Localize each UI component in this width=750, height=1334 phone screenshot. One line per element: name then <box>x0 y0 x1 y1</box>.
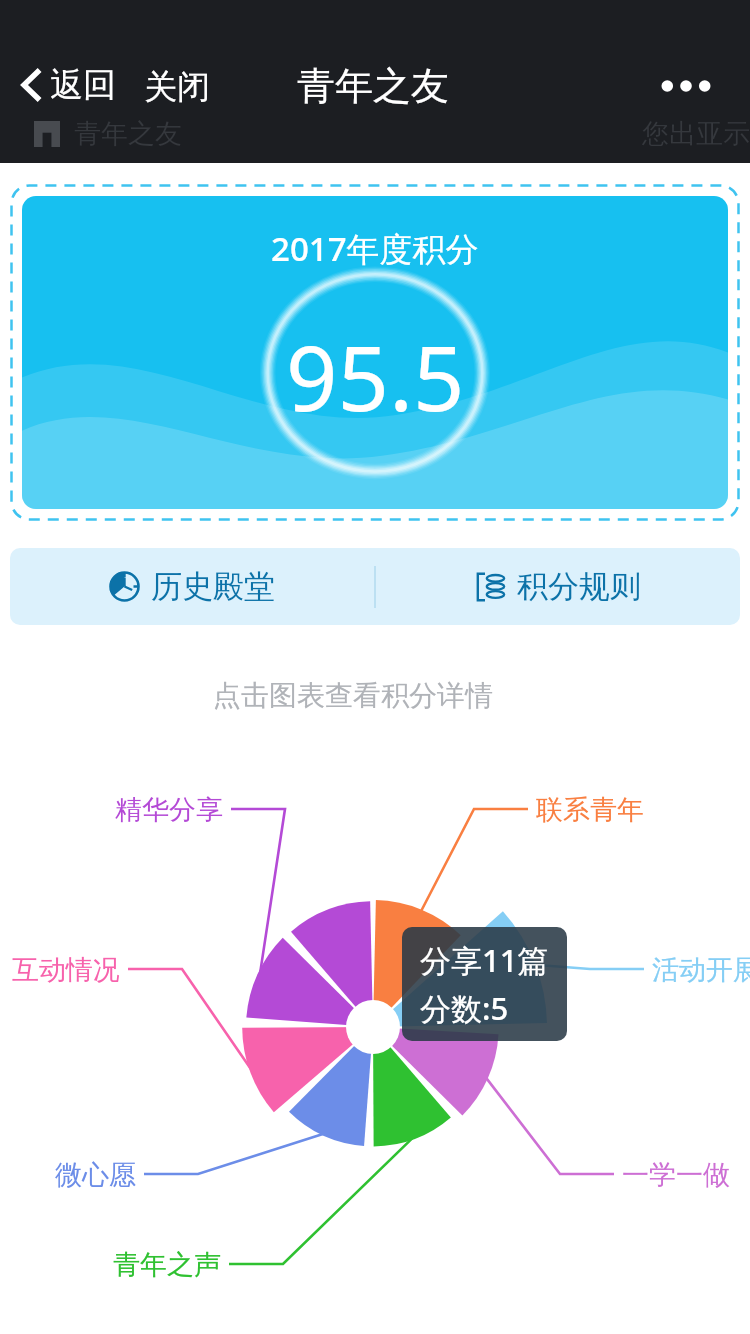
staticText: 2017年度积分 <box>271 226 479 271</box>
button[interactable]: 2017年度积分 <box>10 184 740 521</box>
staticText: 联系青年 <box>536 793 644 827</box>
button[interactable]: More options <box>654 54 718 118</box>
button[interactable]: 历史殿堂 <box>10 548 374 625</box>
staticText: 积分规则 <box>517 567 641 606</box>
button[interactable]: 联系青年 <box>0 0 750 1334</box>
staticText: 95.5 <box>286 315 465 438</box>
staticText: 关闭 <box>144 66 210 108</box>
staticText: 活动开展 <box>652 953 750 987</box>
staticText: 青年之友 <box>74 117 182 151</box>
staticText: 历史殿堂 <box>151 567 275 606</box>
staticText: 一学一做 <box>622 1158 730 1192</box>
staticText: 点击图表查看积分详情 <box>213 678 493 713</box>
staticText: 互动情况 <box>12 953 120 987</box>
staticText: 青年之声 <box>113 1248 221 1282</box>
staticText: 您出亚示 <box>642 117 750 151</box>
staticText: 返回 <box>50 64 116 106</box>
button[interactable]: 积分规则 <box>376 548 740 625</box>
button[interactable]: 关闭 <box>136 60 218 114</box>
staticText: 分享11篇 <box>420 939 549 981</box>
staticText: 分数:5 <box>420 987 509 1029</box>
staticText: 精华分享 <box>115 793 223 827</box>
button[interactable]: 返回 <box>16 56 122 114</box>
staticText: 微心愿 <box>55 1158 136 1192</box>
staticText: 青年之友 <box>297 62 449 110</box>
